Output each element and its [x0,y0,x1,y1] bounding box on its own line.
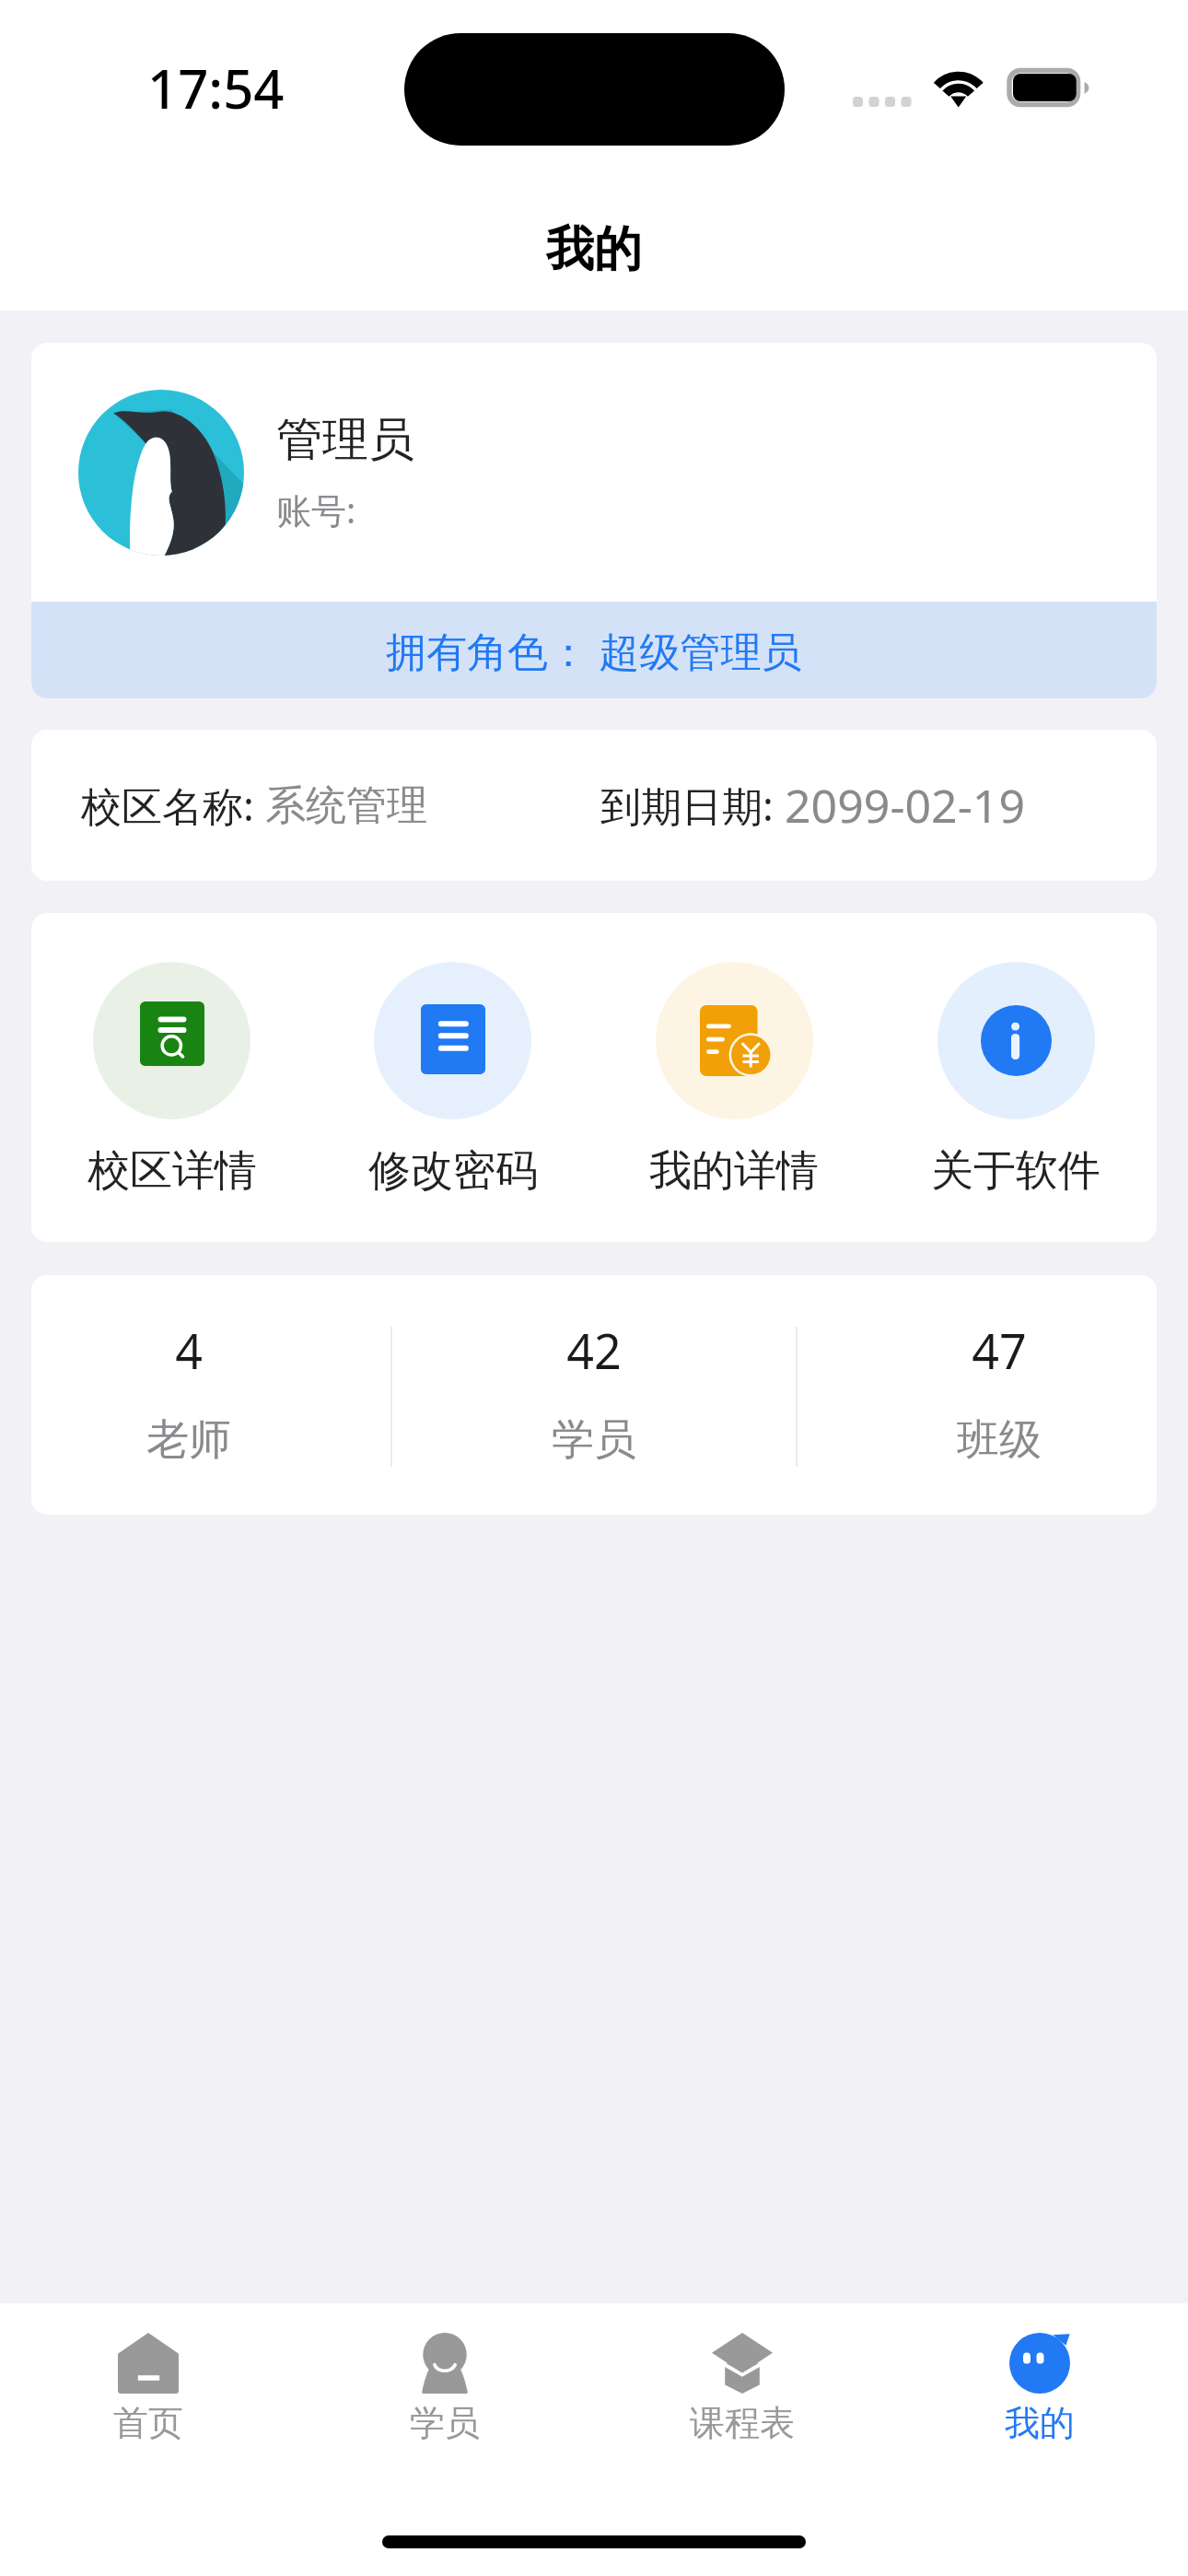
staticText: 校区详情 [87,1144,257,1198]
button[interactable]: 修改密码 [312,913,593,1198]
staticText: 42 [566,1317,622,1383]
staticText: 老师 [146,1413,231,1467]
button[interactable]: 学员 [297,2303,593,2445]
staticText: 到期日期: [600,778,785,833]
button[interactable]: 校区详情 [31,913,312,1198]
button[interactable]: 首页 [0,2303,297,2445]
staticText: 关于软件 [931,1144,1101,1198]
button[interactable]: 我的详情 [593,913,875,1198]
button[interactable]: Avatar [31,343,1157,602]
staticText: 账号: [276,486,356,533]
staticText: 4 [175,1317,203,1383]
staticText: 班级 [957,1413,1042,1467]
button[interactable]: 我的 [891,2303,1188,2445]
staticText: 我的 [546,219,642,280]
other: Avatar [78,390,244,556]
staticText: 系统管理 [265,780,427,831]
button[interactable]: 42 [493,1317,695,1467]
staticText: 我的 [1005,2401,1075,2445]
staticText: 2099-02-19 [785,774,1025,837]
button[interactable]: 4 [87,1317,290,1467]
button[interactable]: 校区名称: [31,730,1157,881]
staticText: 学员 [552,1413,636,1467]
staticText: 校区名称: [81,778,265,833]
staticText: 拥有角色： 超级管理员 [386,623,802,678]
button[interactable]: 拥有角色： 超级管理员 [31,602,1157,698]
staticText: 首页 [113,2401,183,2445]
staticText: 管理员 [276,411,414,469]
staticText: 17:54 [147,52,285,124]
staticText: 课程表 [690,2401,795,2445]
button[interactable]: 关于软件 [875,913,1157,1198]
button[interactable]: 47 [898,1317,1101,1467]
staticText: 修改密码 [368,1144,538,1198]
staticText: 学员 [410,2401,480,2445]
staticText: 47 [972,1317,1027,1383]
button[interactable]: 课程表 [593,2303,891,2445]
staticText: 我的详情 [649,1144,819,1198]
